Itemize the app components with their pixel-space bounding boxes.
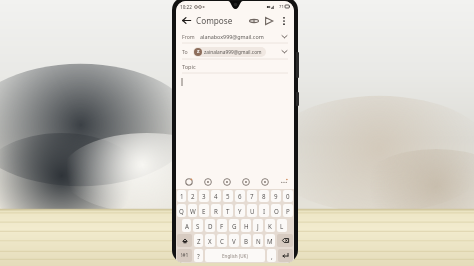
button[interactable]: 3	[199, 190, 209, 202]
staticText: Compose	[196, 15, 233, 26]
button[interactable]: Clipboard	[258, 175, 271, 188]
staticText: P	[286, 207, 290, 215]
button[interactable]: 9	[271, 190, 281, 202]
button[interactable]: 1	[177, 190, 186, 202]
staticText: O	[274, 207, 279, 215]
button[interactable]: M	[265, 234, 275, 247]
button[interactable]: Shift	[177, 234, 192, 247]
staticText: 4	[214, 192, 218, 200]
staticText: English (UK)	[222, 253, 248, 259]
staticText: X	[208, 237, 212, 245]
staticText: J	[257, 222, 259, 230]
button[interactable]: 6	[235, 190, 245, 202]
staticText: S	[196, 222, 200, 230]
button[interactable]: J	[253, 219, 263, 232]
staticText: 10:22	[180, 4, 192, 10]
staticText: ?	[197, 252, 200, 260]
button[interactable]: P	[283, 204, 293, 217]
button[interactable]: English (UK)	[205, 249, 265, 262]
staticText: Z	[197, 237, 201, 245]
staticText: ,	[271, 252, 273, 260]
button[interactable]: 8	[259, 190, 269, 202]
staticText: 0	[286, 192, 290, 200]
staticText: From	[182, 33, 195, 40]
staticText: H	[244, 222, 249, 230]
staticText: To	[182, 48, 188, 55]
button[interactable]: Search	[239, 175, 252, 188]
button[interactable]: More options	[277, 14, 290, 27]
button[interactable]: N	[253, 234, 263, 247]
staticText: W	[190, 207, 196, 215]
staticText: D	[208, 222, 213, 230]
button[interactable]: K	[265, 219, 275, 232]
staticText: 71	[279, 4, 284, 10]
staticText: Q	[179, 207, 184, 215]
button[interactable]: 0	[283, 190, 293, 202]
staticText: V	[232, 237, 236, 245]
button[interactable]: Topic	[176, 60, 294, 73]
staticText: 8	[262, 192, 266, 200]
staticText: L	[280, 222, 284, 230]
staticText: N	[256, 237, 261, 245]
staticText: G	[232, 222, 237, 230]
button[interactable]: Z	[194, 234, 203, 247]
button[interactable]: To	[176, 44, 294, 59]
button[interactable]: A	[182, 219, 191, 232]
button[interactable]: E	[199, 204, 209, 217]
staticText: Topic	[182, 63, 196, 71]
button[interactable]: Send	[262, 14, 275, 27]
button[interactable]: D	[205, 219, 215, 232]
button[interactable]: H	[241, 219, 251, 232]
button[interactable]: From	[176, 30, 294, 43]
staticText: E	[202, 207, 206, 215]
staticText: 9	[274, 192, 278, 200]
staticText: 1	[180, 192, 184, 200]
staticText: zainalana999@gmail.com	[204, 49, 262, 56]
button[interactable]: I	[259, 204, 269, 217]
button[interactable]: C	[217, 234, 227, 247]
button[interactable]: Attach file	[247, 14, 260, 27]
button[interactable]: ,	[267, 249, 276, 262]
button[interactable]: ?	[194, 249, 203, 262]
button[interactable]: B	[241, 234, 251, 247]
button[interactable]: Sticker	[220, 175, 233, 188]
staticText: C	[220, 237, 224, 245]
button[interactable]: Voice input	[201, 175, 214, 188]
staticText: 5	[226, 192, 230, 200]
staticText: R	[214, 207, 218, 215]
button[interactable]: More options	[277, 175, 290, 188]
staticText: 7	[250, 192, 254, 200]
button[interactable]: R	[211, 204, 221, 217]
button[interactable]: 4	[211, 190, 221, 202]
button[interactable]: Enter	[278, 249, 293, 262]
button[interactable]: O	[271, 204, 281, 217]
staticText: alanabox999@gmail.com	[200, 33, 264, 40]
button[interactable]: Y	[235, 204, 245, 217]
staticText: B	[244, 237, 249, 245]
button[interactable]: L	[277, 219, 287, 232]
button[interactable]: Keyboard settings	[182, 175, 195, 188]
button[interactable]: 2	[188, 190, 197, 202]
button[interactable]: T	[223, 204, 233, 217]
button[interactable]: V	[229, 234, 239, 247]
button[interactable]: 5	[223, 190, 233, 202]
button[interactable]: Z	[193, 47, 266, 57]
staticText: 6	[238, 192, 242, 200]
button[interactable]: X	[205, 234, 215, 247]
button[interactable]: S	[193, 219, 203, 232]
staticText: Z	[197, 49, 200, 55]
staticText: 2	[191, 192, 195, 200]
button[interactable]: U	[247, 204, 257, 217]
button[interactable]: Q	[177, 204, 186, 217]
staticText: U	[250, 207, 255, 215]
button[interactable]: F	[217, 219, 227, 232]
staticText: K	[268, 222, 272, 230]
button[interactable]: 7	[247, 190, 257, 202]
button[interactable]: Back	[180, 14, 193, 27]
button[interactable]: !#1	[177, 249, 192, 262]
button[interactable]: G	[229, 219, 239, 232]
staticText: F	[220, 222, 224, 230]
button[interactable]: W	[188, 204, 197, 217]
button[interactable]: Backspace	[277, 234, 293, 247]
